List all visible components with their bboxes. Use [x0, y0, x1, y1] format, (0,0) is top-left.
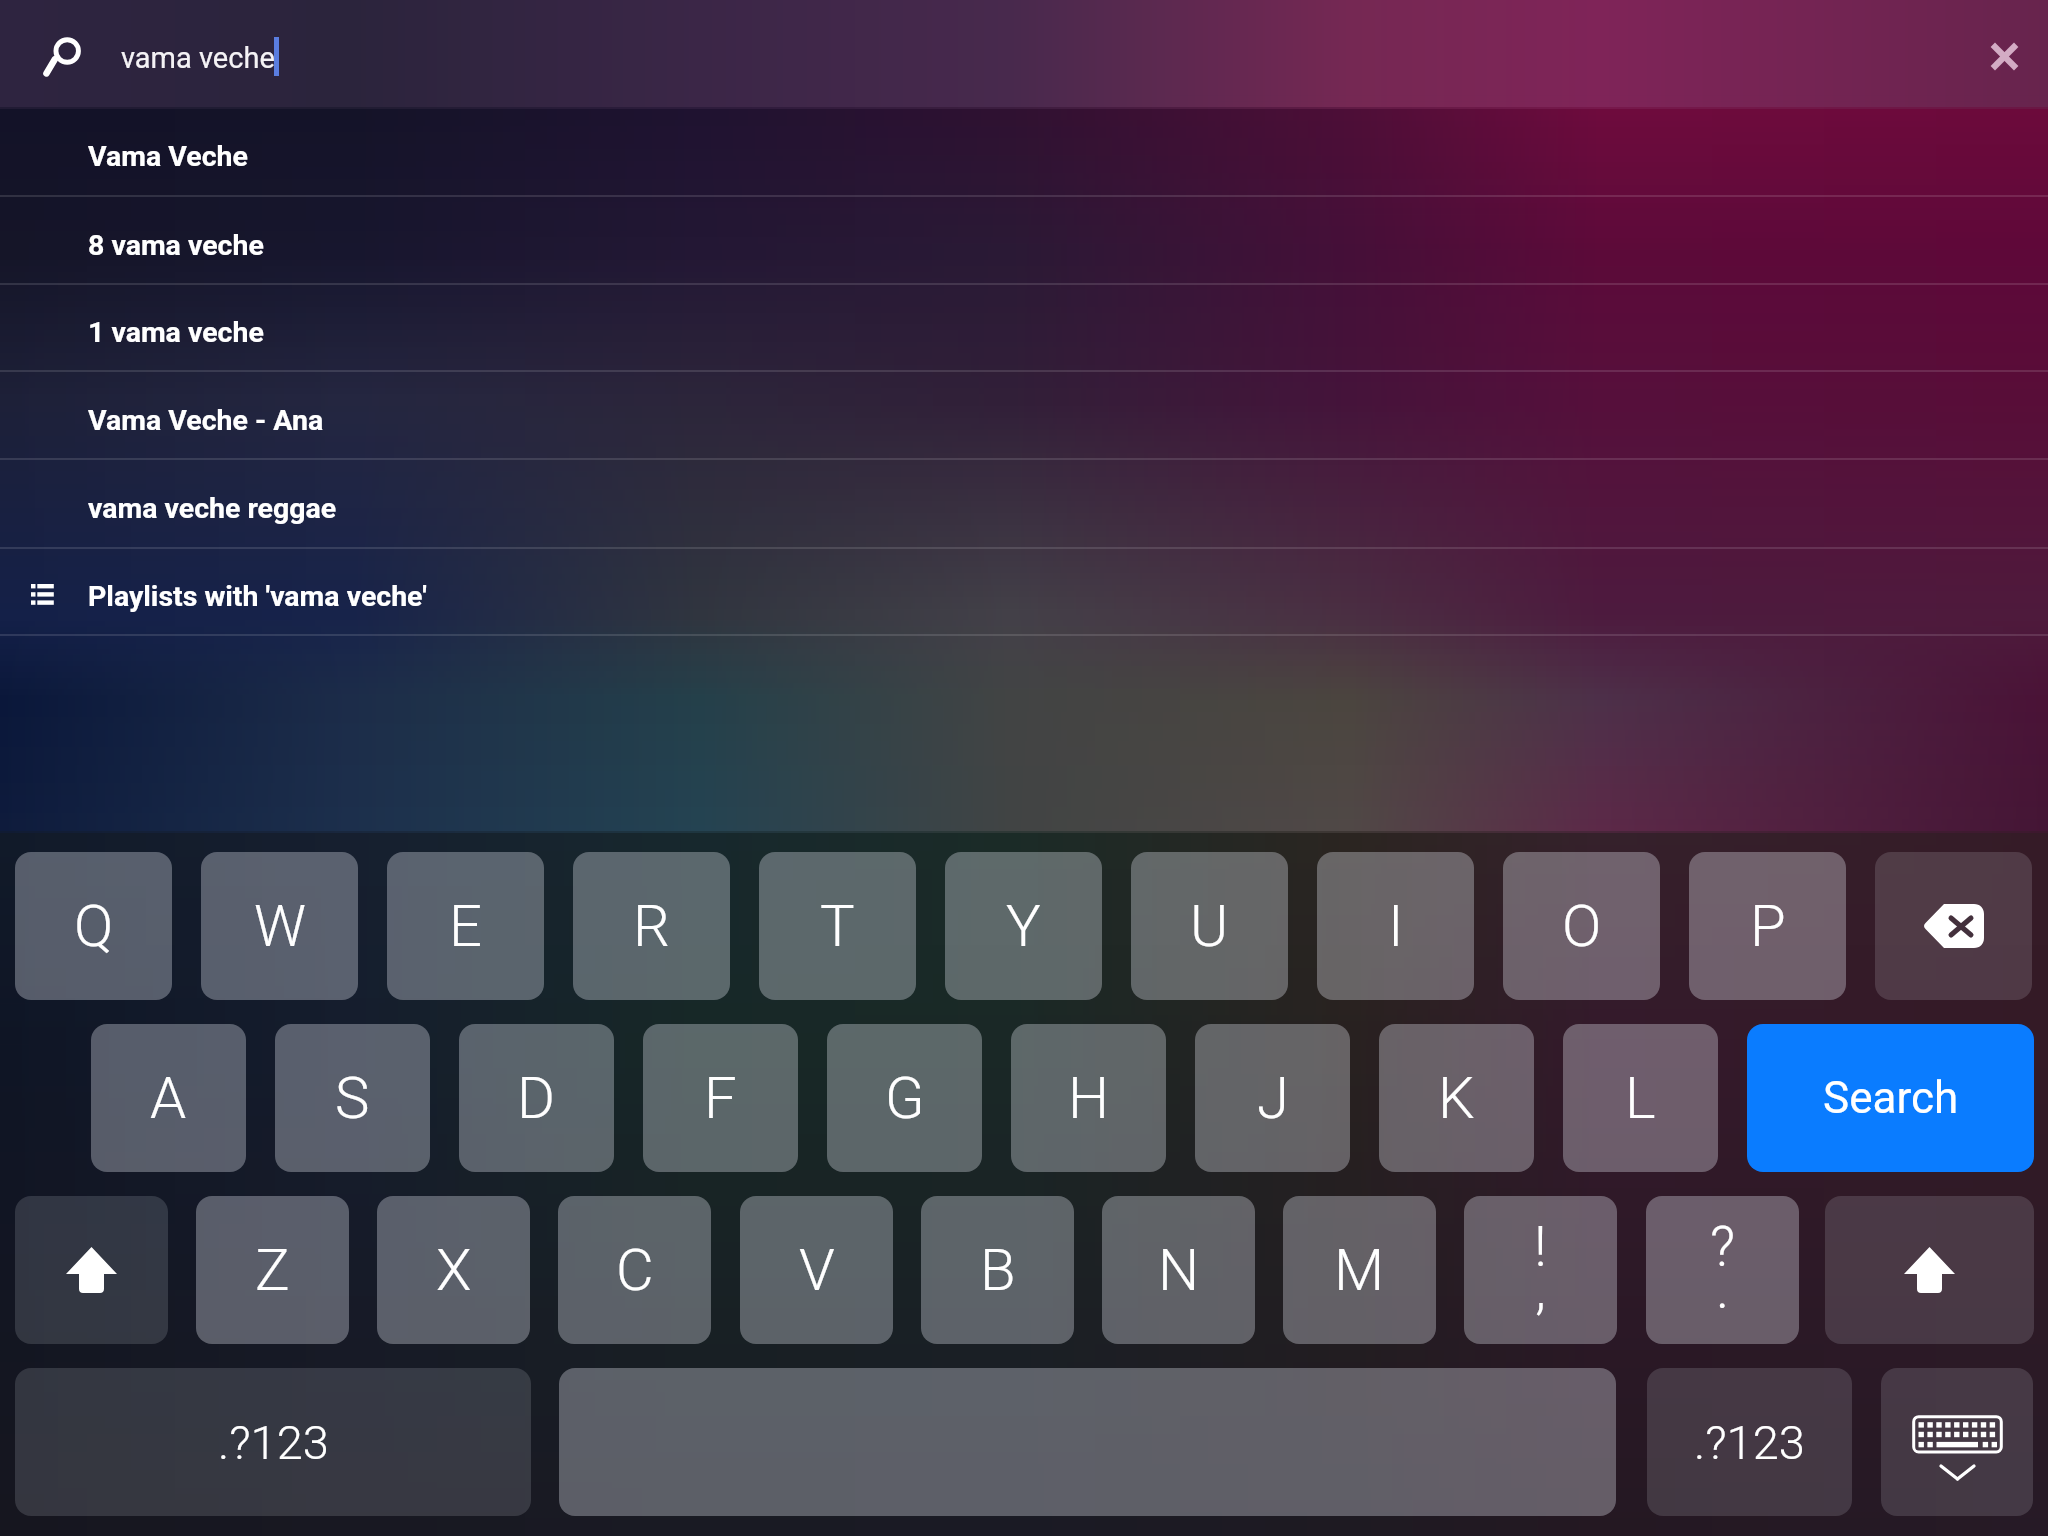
- button[interactable]: X: [377, 1196, 530, 1344]
- button[interactable]: Search: [1747, 1024, 2034, 1172]
- button[interactable]: H: [1011, 1024, 1166, 1172]
- staticText: Q: [74, 892, 114, 960]
- button[interactable]: N: [1102, 1196, 1255, 1344]
- button[interactable]: L: [1563, 1024, 1718, 1172]
- button[interactable]: 8 vama veche: [0, 196, 2048, 284]
- button[interactable]: Hide keyboard: [1881, 1368, 2033, 1516]
- button[interactable]: Z: [196, 1196, 349, 1344]
- button[interactable]: vama veche: [0, 0, 2048, 107]
- button[interactable]: Q: [15, 852, 172, 1000]
- button[interactable]: vama veche reggae: [0, 459, 2048, 548]
- staticText: H: [1068, 1064, 1110, 1132]
- button[interactable]: .?123: [15, 1368, 531, 1516]
- button[interactable]: Y: [945, 852, 1102, 1000]
- button[interactable]: C: [558, 1196, 711, 1344]
- staticText: Vama Veche: [88, 140, 248, 173]
- staticText: E: [449, 892, 482, 960]
- button[interactable]: S: [275, 1024, 430, 1172]
- staticText: U: [1190, 892, 1229, 960]
- staticText: A: [150, 1064, 187, 1132]
- button[interactable]: T: [759, 852, 916, 1000]
- button[interactable]: G: [827, 1024, 982, 1172]
- staticText: M: [1334, 1236, 1385, 1304]
- staticText: J: [1257, 1064, 1289, 1132]
- staticText: vama veche reggae: [88, 492, 337, 525]
- staticText: ?: [1646, 1215, 1799, 1275]
- staticText: D: [517, 1064, 556, 1132]
- button[interactable]: Shift: [15, 1196, 168, 1344]
- button[interactable]: I: [1317, 852, 1474, 1000]
- staticText: V: [799, 1236, 835, 1304]
- staticText: Z: [255, 1236, 290, 1304]
- button[interactable]: U: [1131, 852, 1288, 1000]
- button[interactable]: Exclamation mark and comma: [1464, 1196, 1617, 1344]
- staticText: G: [885, 1064, 925, 1132]
- staticText: Y: [1006, 892, 1041, 960]
- button[interactable]: Vama Veche: [0, 107, 2048, 196]
- staticText: N: [1158, 1236, 1200, 1304]
- staticText: X: [436, 1236, 472, 1304]
- button[interactable]: B: [921, 1196, 1074, 1344]
- button[interactable]: Playlists with 'vama veche': [0, 548, 2048, 635]
- button[interactable]: K: [1379, 1024, 1534, 1172]
- staticText: I: [1388, 892, 1404, 960]
- button[interactable]: J: [1195, 1024, 1350, 1172]
- button[interactable]: E: [387, 852, 544, 1000]
- staticText: .?123: [1694, 1415, 1805, 1470]
- button[interactable]: R: [573, 852, 730, 1000]
- button[interactable]: M: [1283, 1196, 1436, 1344]
- staticText: L: [1625, 1064, 1656, 1132]
- staticText: S: [335, 1064, 370, 1132]
- staticText: B: [980, 1236, 1016, 1304]
- button[interactable]: V: [740, 1196, 893, 1344]
- staticText: 8 vama veche: [88, 229, 264, 262]
- staticText: Vama Veche - Ana: [88, 404, 324, 437]
- button[interactable]: Clear search: [1968, 20, 2040, 92]
- staticText: !: [1464, 1215, 1617, 1275]
- button[interactable]: 1 vama veche: [0, 284, 2048, 371]
- staticText: F: [704, 1064, 737, 1132]
- button[interactable]: A: [91, 1024, 246, 1172]
- button[interactable]: W: [201, 852, 358, 1000]
- button[interactable]: Space: [559, 1368, 1616, 1516]
- button[interactable]: Vama Veche - Ana: [0, 371, 2048, 459]
- staticText: C: [616, 1236, 654, 1304]
- button[interactable]: .?123: [1647, 1368, 1852, 1516]
- button[interactable]: F: [643, 1024, 798, 1172]
- staticText: R: [633, 892, 670, 960]
- button[interactable]: P: [1689, 852, 1846, 1000]
- button[interactable]: Question mark and full stop: [1646, 1196, 1799, 1344]
- staticText: K: [1438, 1064, 1475, 1132]
- staticText: O: [1562, 892, 1602, 960]
- staticText: Playlists with 'vama veche': [88, 580, 427, 613]
- staticText: vama veche: [121, 41, 275, 75]
- button[interactable]: Backspace: [1875, 852, 2032, 1000]
- staticText: .?123: [218, 1415, 329, 1470]
- button[interactable]: Shift: [1825, 1196, 2034, 1344]
- button[interactable]: D: [459, 1024, 614, 1172]
- staticText: 1 vama veche: [88, 316, 264, 349]
- staticText: W: [254, 892, 306, 960]
- button[interactable]: O: [1503, 852, 1660, 1000]
- staticText: T: [820, 892, 855, 960]
- staticText: .: [1646, 1257, 1799, 1317]
- staticText: Search: [1823, 1072, 1959, 1124]
- staticText: ,: [1464, 1257, 1617, 1317]
- staticText: P: [1750, 892, 1786, 960]
